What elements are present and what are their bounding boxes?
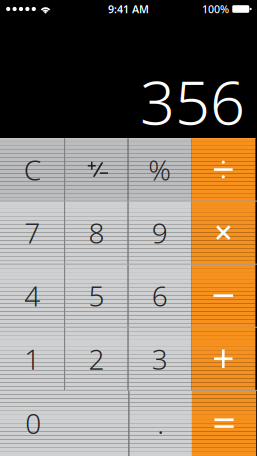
button[interactable]: 1: [0, 327, 64, 390]
staticText: 100%: [202, 2, 229, 16]
button[interactable]: Divide: [191, 138, 255, 201]
button[interactable]: Equals: [192, 390, 256, 456]
staticText: 5: [88, 277, 104, 314]
button[interactable]: Plus Minus: [65, 138, 128, 201]
button[interactable]: 3: [128, 327, 191, 390]
staticText: 4: [24, 277, 40, 314]
staticText: 3: [152, 340, 168, 377]
button[interactable]: 7: [0, 201, 64, 264]
button[interactable]: Zero: [0, 390, 128, 456]
staticText: 356: [140, 60, 245, 142]
button[interactable]: Decimal point: [129, 390, 192, 456]
button[interactable]: Plus: [191, 327, 255, 390]
button[interactable]: 2: [65, 327, 128, 390]
button[interactable]: Percent: [128, 138, 191, 201]
staticText: 7: [24, 214, 40, 251]
staticText: %: [148, 151, 171, 188]
button[interactable]: 9: [128, 201, 191, 264]
button[interactable]: 6: [128, 264, 191, 327]
staticText: 0: [25, 405, 41, 442]
staticText: 8: [88, 214, 104, 251]
staticText: .: [157, 405, 164, 442]
staticText: C: [24, 151, 41, 188]
staticText: 9:41 AM: [108, 2, 149, 16]
button[interactable]: Clear: [0, 138, 64, 201]
staticText: 2: [88, 340, 104, 377]
staticText: 9: [152, 214, 168, 251]
button[interactable]: 5: [65, 264, 128, 327]
button[interactable]: Minus: [191, 264, 255, 327]
button[interactable]: 4: [0, 264, 64, 327]
button[interactable]: Multiply: [191, 201, 255, 264]
staticText: 1: [24, 340, 40, 377]
button[interactable]: 8: [65, 201, 128, 264]
staticText: 6: [152, 277, 168, 314]
